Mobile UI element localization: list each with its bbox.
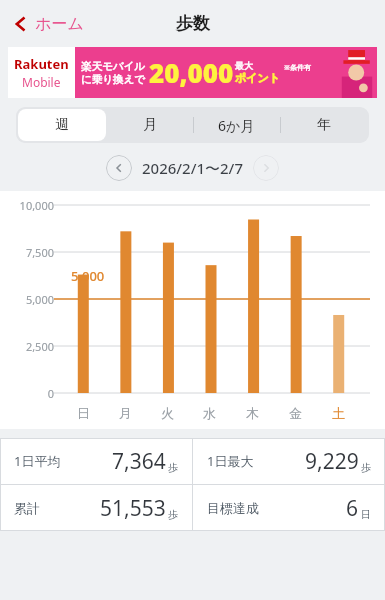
staticText: 6か月 bbox=[218, 116, 255, 135]
staticText: 月 bbox=[143, 116, 157, 134]
staticText: 最大 bbox=[235, 60, 253, 71]
staticText: 1日平均 bbox=[14, 452, 61, 470]
button[interactable]: 目標達成 bbox=[193, 485, 385, 531]
staticText: 20,000 bbox=[149, 55, 234, 90]
button[interactable]: 1日最大 bbox=[193, 438, 385, 484]
staticText: 歩 bbox=[168, 461, 178, 474]
staticText: 累計 bbox=[14, 500, 40, 516]
button[interactable]: 週 bbox=[18, 109, 106, 141]
button[interactable]: ホーム bbox=[9, 10, 88, 38]
staticText: 5,000 bbox=[4, 292, 54, 307]
staticText: 歩 bbox=[168, 508, 178, 521]
staticText: 51,553 bbox=[100, 494, 166, 523]
staticText: Rakuten bbox=[14, 55, 69, 73]
staticText: 月 bbox=[119, 405, 132, 421]
staticText: ポイント bbox=[235, 71, 281, 85]
staticText: 水 bbox=[203, 405, 216, 421]
staticText: 歩 bbox=[361, 461, 371, 474]
staticText: ホーム bbox=[35, 14, 84, 34]
staticText: 0 bbox=[4, 386, 54, 401]
staticText: 年 bbox=[317, 116, 331, 134]
button[interactable]: 累計 bbox=[0, 485, 192, 531]
staticText: 日 bbox=[77, 405, 90, 421]
staticText: 目標達成 bbox=[207, 500, 259, 516]
staticText: に乗り換えで bbox=[81, 73, 145, 86]
staticText: 火 bbox=[161, 405, 174, 421]
staticText: 歩数 bbox=[176, 13, 210, 34]
button[interactable]: 1日平均 bbox=[0, 438, 192, 484]
button[interactable]: 6か月 bbox=[193, 109, 280, 141]
staticText: 7,364 bbox=[112, 447, 166, 476]
staticText: 土 bbox=[332, 405, 345, 421]
staticText: 2026/2/1〜2/7 bbox=[142, 158, 243, 178]
staticText: 9,229 bbox=[305, 447, 359, 476]
staticText: 6 bbox=[346, 494, 359, 523]
staticText: 木 bbox=[246, 405, 259, 421]
button[interactable]: Rakuten Mobile advertisement bbox=[8, 47, 377, 98]
staticText: ※条件有 bbox=[284, 63, 311, 73]
button[interactable]: Previous week bbox=[106, 155, 132, 181]
staticText: 楽天モバイル bbox=[81, 60, 145, 73]
staticText: 10,000 bbox=[4, 198, 54, 213]
staticText: 2,500 bbox=[4, 339, 54, 354]
button[interactable]: 月 bbox=[106, 109, 193, 141]
staticText: 週 bbox=[55, 116, 69, 134]
staticText: 5,000 bbox=[71, 267, 105, 285]
staticText: 日 bbox=[361, 508, 371, 521]
staticText: 7,500 bbox=[4, 245, 54, 260]
button[interactable]: Next week bbox=[253, 155, 279, 181]
staticText: Mobile bbox=[22, 74, 61, 90]
staticText: 金 bbox=[289, 405, 302, 421]
button[interactable]: 年 bbox=[280, 109, 367, 141]
staticText: 1日最大 bbox=[207, 452, 254, 470]
